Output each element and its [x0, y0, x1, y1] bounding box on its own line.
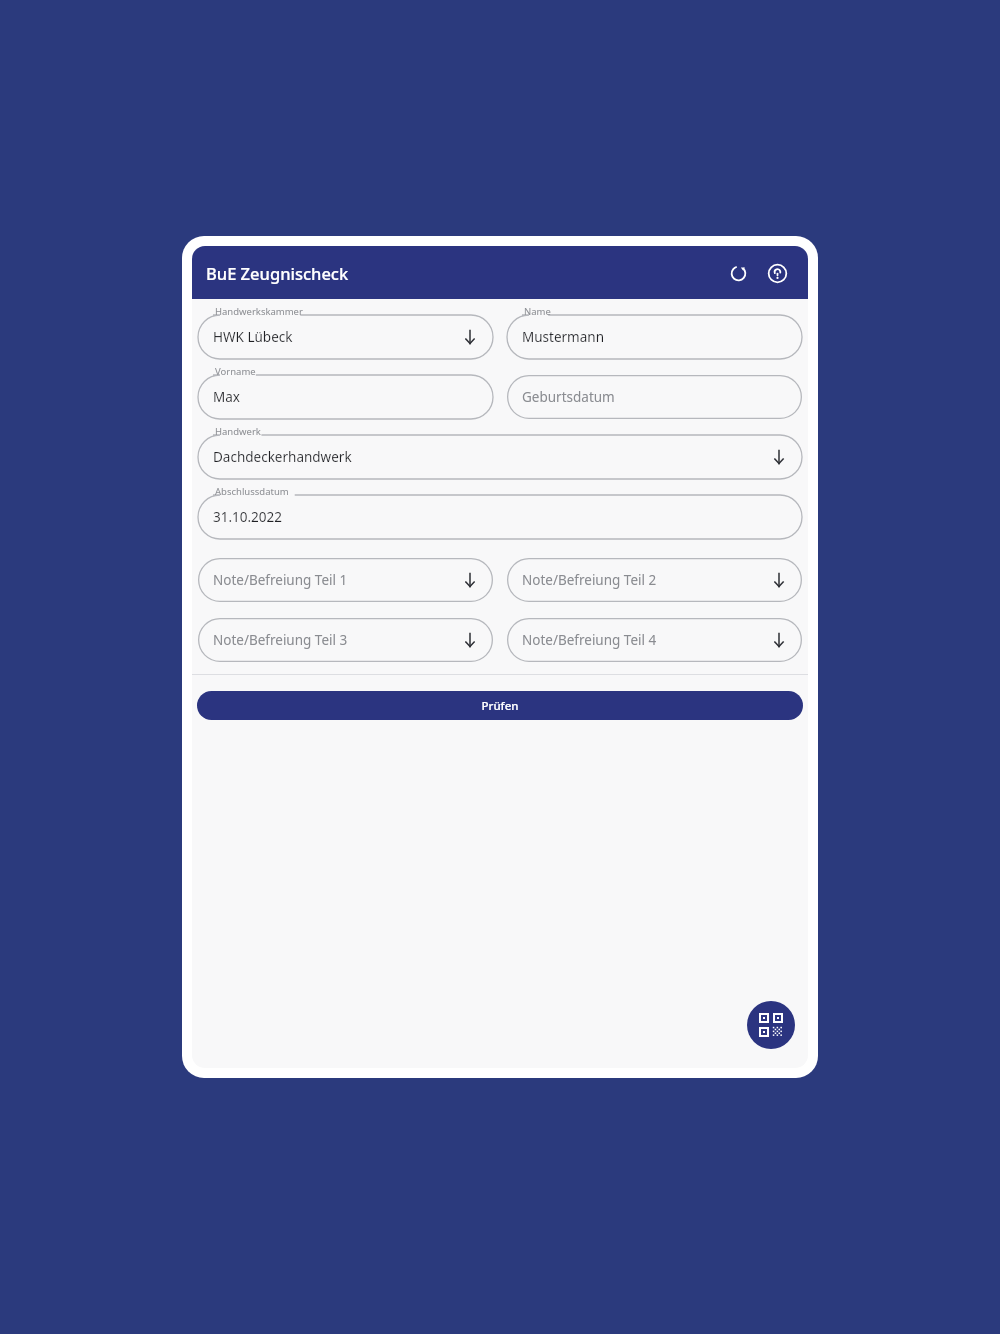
other: Auswahl öffnen — [461, 328, 479, 346]
staticText: Note/Befreiung Teil 2 — [522, 571, 770, 589]
staticText: Note/Befreiung Teil 1 — [213, 571, 461, 589]
staticText: Name — [524, 305, 551, 318]
other: Auswahl öffnen — [461, 631, 479, 649]
button[interactable]: Dachdeckerhandwerk — [198, 425, 802, 479]
staticText: Abschlussdatum — [215, 485, 289, 498]
button[interactable]: Mustermann — [507, 305, 802, 359]
staticText: Handwerk — [215, 425, 261, 438]
staticText: HWK Lübeck — [213, 328, 461, 346]
button[interactable]: Max — [198, 365, 493, 419]
other: Auswahl öffnen — [770, 448, 788, 466]
button[interactable]: Note/Befreiung Teil 3 — [198, 608, 493, 662]
staticText: Note/Befreiung Teil 4 — [522, 631, 770, 649]
staticText: BuE Zeugnischeck — [206, 262, 721, 284]
button[interactable]: Note/Befreiung Teil 4 — [507, 608, 802, 662]
button[interactable]: HWK Lübeck — [198, 305, 493, 359]
staticText: Prüfen — [481, 698, 519, 714]
staticText: Mustermann — [522, 328, 788, 346]
staticText: Dachdeckerhandwerk — [213, 448, 770, 466]
staticText: Geburtsdatum — [522, 388, 788, 406]
staticText: Handwerkskammer — [215, 305, 303, 318]
button[interactable]: Geburtsdatum — [507, 365, 802, 419]
other: Auswahl öffnen — [770, 571, 788, 589]
staticText: 31.10.2022 — [213, 508, 788, 526]
staticText: Vorname — [215, 365, 256, 378]
button[interactable]: Prüfen — [197, 691, 803, 720]
other: Auswahl öffnen — [461, 571, 479, 589]
staticText: Max — [213, 388, 479, 406]
staticText: Note/Befreiung Teil 3 — [213, 631, 461, 649]
button[interactable]: Note/Befreiung Teil 2 — [507, 548, 802, 602]
button[interactable]: QR-Code scannen — [747, 1001, 795, 1049]
button[interactable]: Note/Befreiung Teil 1 — [198, 548, 493, 602]
button[interactable]: Zurücksetzen — [721, 256, 755, 290]
button[interactable]: Hilfe — [760, 256, 794, 290]
button[interactable]: 31.10.2022 — [198, 485, 802, 539]
other: Auswahl öffnen — [770, 631, 788, 649]
